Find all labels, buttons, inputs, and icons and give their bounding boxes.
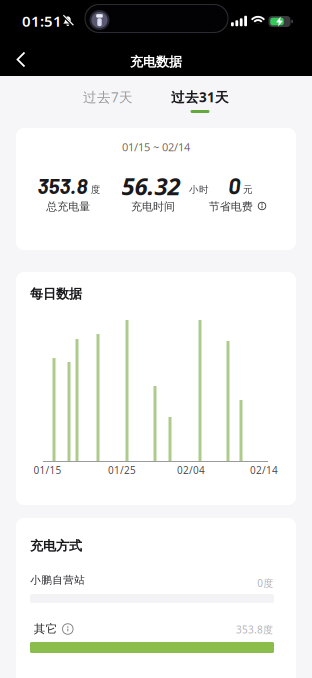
staticText: 小鹏自营站	[30, 573, 85, 587]
staticText: 353.8	[37, 173, 87, 198]
staticText: 度	[91, 183, 101, 195]
staticText: 01/15	[33, 463, 61, 477]
staticText: 充电时间	[131, 200, 175, 213]
staticText: 小时	[189, 183, 209, 195]
staticText: 353.8度	[236, 623, 273, 636]
staticText: 每日数据	[30, 286, 82, 302]
staticText: 02/04	[177, 463, 205, 477]
button[interactable]: 过去31天	[161, 82, 239, 112]
staticText: 过去7天	[83, 88, 133, 106]
staticText: 充电数据	[130, 54, 182, 70]
button[interactable]: Back	[0, 40, 44, 79]
button[interactable]: About other charging	[62, 623, 73, 635]
staticText: 其它	[34, 622, 58, 636]
button[interactable]: 过去7天	[72, 82, 144, 112]
staticText: 总充电量	[46, 200, 90, 213]
staticText: 过去31天	[171, 88, 229, 106]
staticText: 0度	[257, 576, 273, 590]
staticText: 01:51	[22, 11, 62, 31]
staticText: 元	[243, 183, 253, 195]
staticText: 56.32	[121, 170, 180, 202]
staticText: 0	[228, 172, 240, 199]
staticText: 01/15 ~ 02/14	[122, 139, 190, 154]
staticText: 充电方式	[30, 538, 82, 554]
button[interactable]: About saved cost	[258, 202, 266, 210]
staticText: 节省电费	[209, 200, 253, 213]
staticText: 02/14	[250, 463, 278, 477]
staticText: 01/25	[108, 463, 136, 477]
